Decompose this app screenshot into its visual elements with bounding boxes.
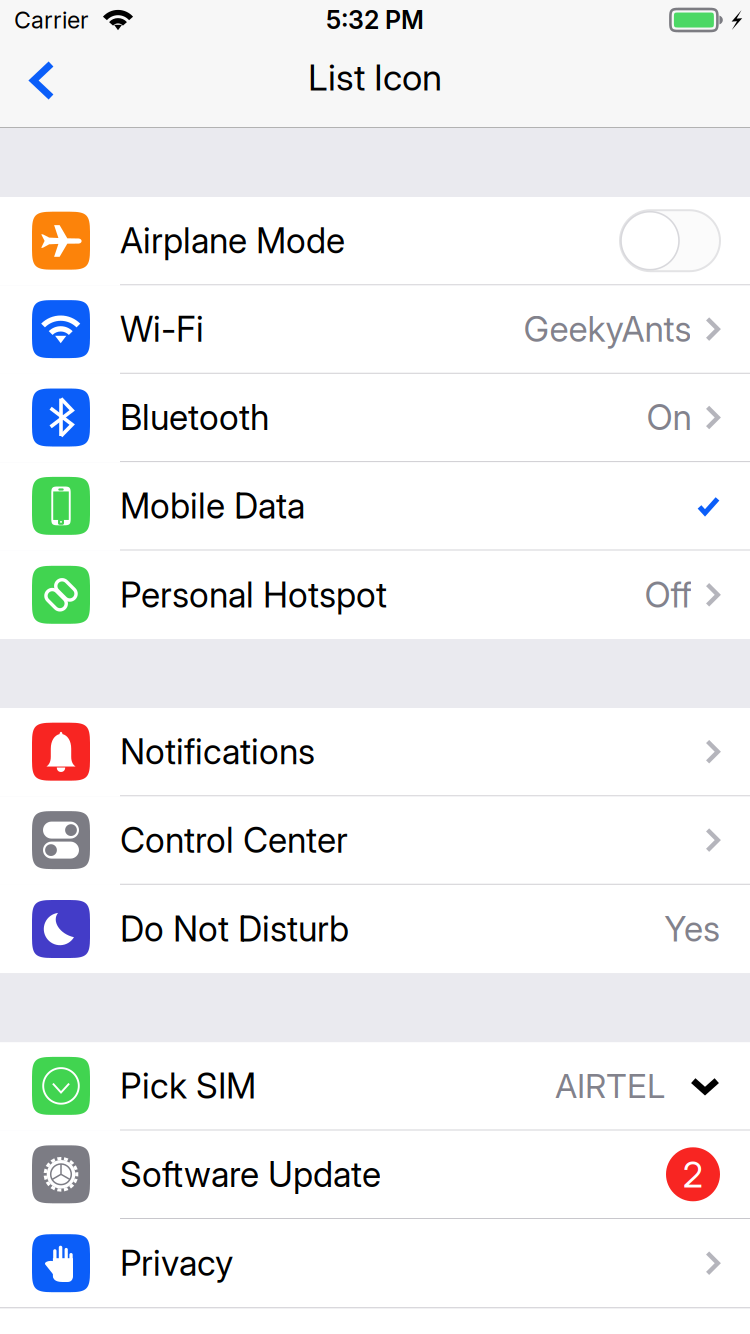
staticText: GeekyAnts <box>523 308 691 350</box>
staticText: Carrier <box>14 6 88 34</box>
staticText: 2 <box>682 1152 703 1196</box>
staticText: Off <box>644 574 691 616</box>
button[interactable]: Control Center <box>0 796 750 885</box>
button[interactable]: Wi-Fi <box>0 285 750 374</box>
staticText: On <box>646 396 691 438</box>
button[interactable]: Privacy <box>0 1219 750 1307</box>
staticText: Privacy <box>120 1242 233 1284</box>
staticText: Yes <box>664 908 720 950</box>
staticText: Control Center <box>120 819 348 861</box>
button[interactable]: Bluetooth <box>0 374 750 462</box>
staticText: Notifications <box>120 731 315 773</box>
staticText: List Icon <box>308 56 442 99</box>
button[interactable]: Do Not Disturb <box>0 885 750 973</box>
button[interactable]: Mobile Data <box>0 462 750 551</box>
staticText: Pick SIM <box>120 1065 256 1107</box>
staticText: 5:32 PM <box>326 5 424 35</box>
staticText: Do Not Disturb <box>120 908 349 950</box>
button[interactable]: Airplane Mode <box>0 197 750 285</box>
button[interactable]: Software Update <box>0 1131 750 1219</box>
button[interactable]: Notifications <box>0 708 750 796</box>
staticText: Airplane Mode <box>120 220 345 262</box>
button[interactable]: Pick SIM <box>0 1042 750 1131</box>
staticText: Software Update <box>120 1153 381 1195</box>
staticText: Mobile Data <box>120 485 305 527</box>
staticText: Personal Hotspot <box>120 574 387 616</box>
button[interactable]: Back <box>0 42 79 124</box>
staticText: AIRTEL <box>555 1066 665 1106</box>
staticText: Bluetooth <box>120 396 269 438</box>
staticText: Wi-Fi <box>120 308 204 350</box>
button[interactable]: Personal Hotspot <box>0 551 750 639</box>
